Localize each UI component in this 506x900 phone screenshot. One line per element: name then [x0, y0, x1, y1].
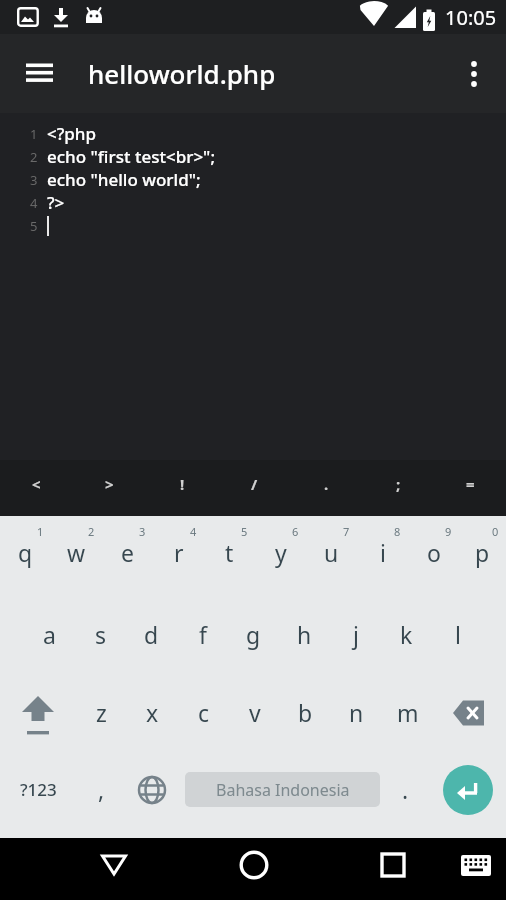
staticText: ,	[98, 774, 105, 805]
staticText: echo "first test<br>";	[47, 145, 216, 168]
button[interactable]: c	[178, 674, 229, 751]
staticText: 4	[30, 194, 38, 212]
button[interactable]	[430, 751, 506, 828]
button[interactable]: ,	[76, 751, 127, 828]
button[interactable]: n	[331, 674, 382, 751]
staticText: Bahasa Indonesia	[216, 779, 350, 801]
button[interactable]: z	[76, 674, 127, 751]
button[interactable]: w	[51, 516, 102, 588]
staticText: j	[353, 619, 359, 650]
staticText: g	[246, 619, 261, 650]
staticText: z	[96, 697, 107, 728]
button[interactable]	[323, 838, 462, 891]
button[interactable]: v	[229, 674, 280, 751]
button[interactable]: x	[127, 674, 178, 751]
button[interactable]: b	[280, 674, 331, 751]
button[interactable]: i	[357, 516, 408, 588]
staticText: 4	[190, 524, 197, 539]
staticText: r	[174, 537, 184, 568]
button[interactable]: h	[279, 594, 330, 674]
button[interactable]	[44, 838, 184, 891]
button[interactable]	[446, 46, 502, 102]
staticText: ;	[396, 474, 401, 494]
staticText: ?>	[47, 191, 65, 214]
button[interactable]: l	[432, 594, 483, 674]
staticText: n	[349, 697, 364, 728]
button[interactable]: .	[290, 460, 362, 508]
staticText: 10:05	[445, 4, 497, 31]
staticText: v	[249, 697, 261, 728]
staticText: m	[397, 697, 419, 728]
staticText: k	[400, 619, 413, 650]
button[interactable]: o	[408, 516, 459, 588]
staticText: echo "hello world";	[47, 168, 201, 191]
staticText: ?123	[20, 778, 57, 801]
button[interactable]: r	[153, 516, 204, 588]
staticText: y	[275, 537, 287, 568]
staticText: 0	[492, 524, 499, 539]
button[interactable]: m	[382, 674, 433, 751]
staticText: 2	[30, 148, 38, 166]
staticText: u	[324, 537, 339, 568]
staticText: h	[297, 619, 312, 650]
button[interactable]: y	[255, 516, 306, 588]
button[interactable]: =	[434, 460, 506, 508]
button[interactable]: a	[24, 594, 75, 674]
staticText: q	[18, 537, 33, 568]
button[interactable]	[458, 847, 494, 883]
button[interactable]: k	[381, 594, 432, 674]
button[interactable]: f	[177, 594, 228, 674]
button[interactable]: ?123	[0, 751, 76, 828]
staticText: 5	[241, 524, 248, 539]
button[interactable]: u	[306, 516, 357, 588]
staticText: 3	[139, 524, 146, 539]
button[interactable]: .	[380, 751, 430, 828]
staticText: =	[466, 474, 475, 494]
staticText: p	[475, 537, 490, 568]
button[interactable]: d	[126, 594, 177, 674]
button[interactable]: p	[459, 516, 506, 588]
staticText: 1	[37, 524, 44, 539]
button[interactable]	[127, 751, 177, 828]
button[interactable]: t	[204, 516, 255, 588]
button[interactable]: Bahasa Indonesia	[177, 751, 380, 828]
button[interactable]: q	[0, 516, 51, 588]
staticText: t	[225, 537, 234, 568]
staticText: >	[105, 474, 114, 494]
staticText: 2	[88, 524, 95, 539]
staticText: a	[43, 619, 56, 650]
staticText: s	[95, 619, 107, 650]
button[interactable]: !	[146, 460, 218, 508]
staticText: 3	[30, 171, 38, 189]
button[interactable]: g	[228, 594, 279, 674]
staticText: <?php	[47, 122, 97, 145]
button[interactable]: ;	[362, 460, 434, 508]
staticText: c	[198, 697, 210, 728]
staticText: x	[146, 697, 159, 728]
staticText: .	[402, 774, 409, 805]
button[interactable]: s	[75, 594, 126, 674]
staticText: 1	[30, 125, 38, 143]
staticText: !	[180, 474, 185, 494]
staticText: /	[251, 474, 258, 494]
staticText: b	[298, 697, 313, 728]
button[interactable]: e	[102, 516, 153, 588]
staticText: 8	[394, 524, 401, 539]
staticText: 7	[343, 524, 350, 539]
staticText: 5	[30, 217, 38, 235]
button[interactable]: >	[73, 460, 146, 508]
button[interactable]	[184, 838, 323, 891]
staticText: helloworld.php	[88, 56, 276, 91]
button[interactable]	[12, 46, 68, 102]
staticText: d	[144, 619, 159, 650]
button[interactable]	[443, 765, 493, 815]
staticText: l	[455, 619, 461, 650]
button[interactable]: /	[218, 460, 290, 508]
button[interactable]: j	[330, 594, 381, 674]
staticText: f	[199, 619, 207, 650]
staticText: w	[67, 537, 86, 568]
button[interactable]: <	[0, 460, 73, 508]
button[interactable]	[0, 674, 76, 751]
button[interactable]	[433, 674, 506, 751]
staticText: <	[32, 474, 41, 494]
